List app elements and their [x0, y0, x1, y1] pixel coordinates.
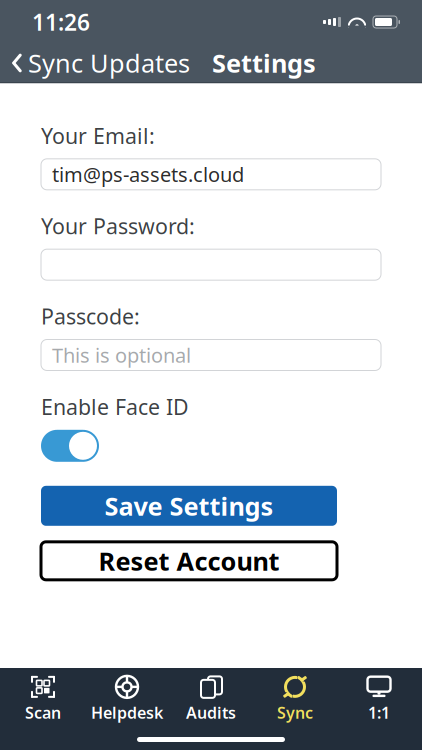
staticText: Settings [212, 46, 316, 80]
button[interactable]: Sync Updates [0, 40, 190, 86]
staticText: Audits [186, 702, 236, 723]
staticText: Your Email: [41, 121, 155, 150]
staticText: This is optional [52, 342, 191, 368]
staticText: Enable Face ID [41, 392, 189, 421]
button[interactable]: Scan [1, 676, 85, 722]
staticText: 11:26 [32, 7, 90, 37]
staticText: Passcode: [41, 302, 140, 330]
button[interactable]: Sync [253, 676, 337, 722]
button[interactable]: Reset Account [41, 542, 337, 580]
button[interactable]: 1:1 [337, 676, 421, 722]
staticText: Sync Updates [28, 46, 190, 80]
staticText: tim@ps-assets.cloud [52, 161, 244, 188]
staticText: Sync [277, 702, 313, 723]
staticText: Save Settings [104, 489, 273, 523]
button[interactable]: Enable Face ID [41, 430, 99, 462]
button[interactable]: Save Settings [41, 486, 337, 526]
button[interactable]: Audits [169, 676, 253, 722]
staticText: Helpdesk [91, 702, 163, 723]
button[interactable]: Helpdesk [85, 676, 169, 722]
staticText: 1:1 [368, 702, 390, 723]
staticText: Reset Account [98, 544, 279, 578]
staticText: Your Password: [41, 212, 195, 240]
staticText: Scan [25, 702, 61, 723]
